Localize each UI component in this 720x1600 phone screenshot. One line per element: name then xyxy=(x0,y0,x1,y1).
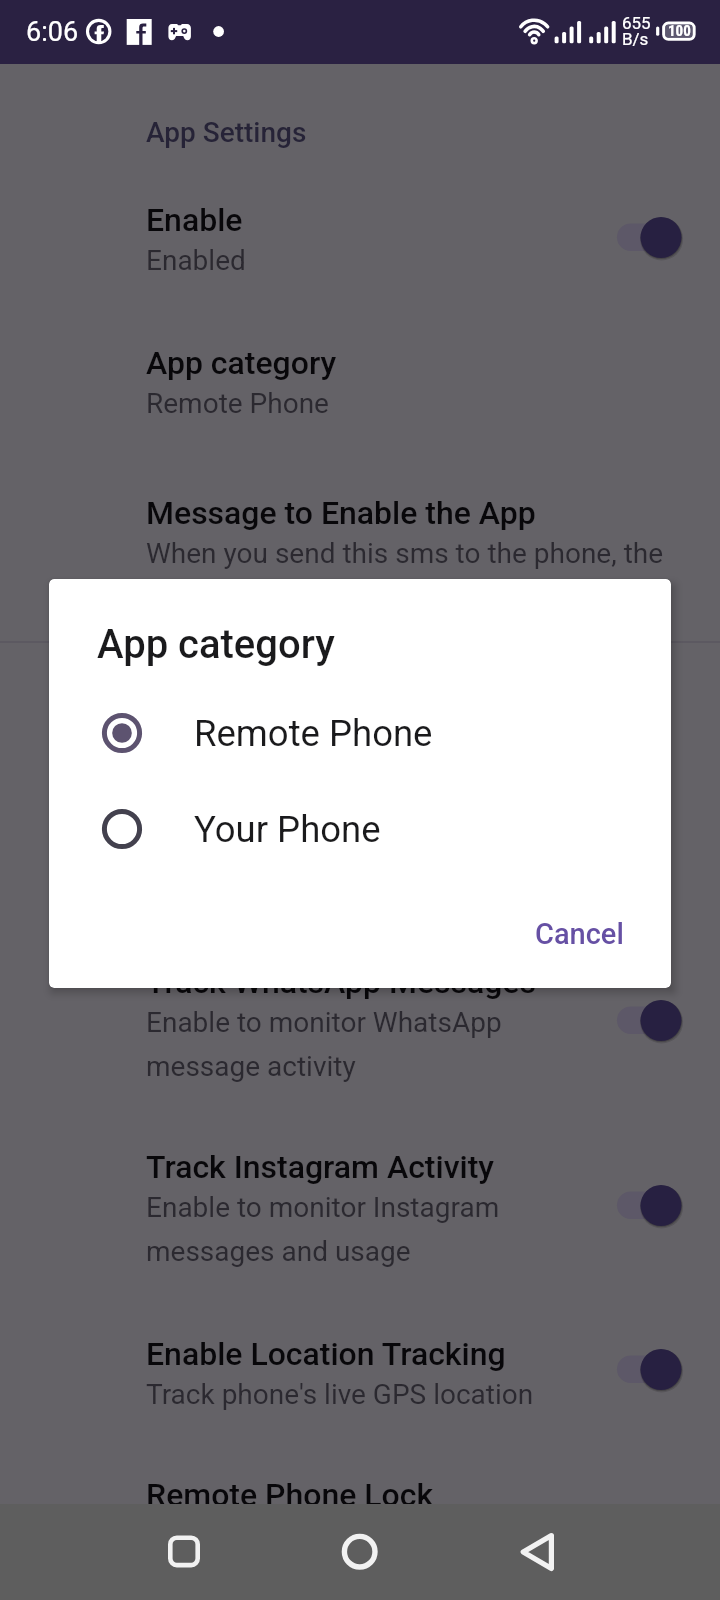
staticText: Remote Phone xyxy=(194,712,433,755)
staticText: App Settings xyxy=(146,116,307,149)
staticText: Remote Phone Lock xyxy=(146,1476,434,1514)
staticText: App category xyxy=(97,621,335,668)
staticText: Track phone's live GPS location xyxy=(146,1378,534,1411)
staticText: App category xyxy=(146,344,337,382)
button[interactable]: Cancel xyxy=(515,903,644,965)
button[interactable]: Recent apps xyxy=(140,1508,228,1596)
button[interactable]: Track Instagram Activity xyxy=(146,1148,666,1263)
button[interactable]: Remote Phone xyxy=(49,685,671,781)
button[interactable]: Track WhatsApp Messages xyxy=(146,963,666,1078)
staticText: Track WhatsApp Messages xyxy=(146,963,536,1001)
staticText: 100 xyxy=(668,22,691,40)
button[interactable]: Home xyxy=(316,1508,404,1596)
staticText: Enable Location Tracking xyxy=(146,1335,506,1373)
staticText: Enabled xyxy=(146,244,246,277)
staticText: Cancel xyxy=(535,917,624,951)
staticText: Enable to monitor Instagram messages and… xyxy=(146,1191,500,1268)
staticText: When you send this sms to the phone, the xyxy=(146,537,664,570)
staticText: 6:06 xyxy=(26,16,79,48)
button[interactable]: Message to Enable the App xyxy=(146,494,666,565)
staticText: Remote Phone xyxy=(146,387,329,420)
button[interactable]: App category xyxy=(146,344,666,415)
staticText: Your Phone xyxy=(194,808,381,851)
staticText: Enable to monitor WhatsApp message activ… xyxy=(146,1006,502,1083)
button[interactable]: Enable xyxy=(146,201,666,272)
button[interactable]: Enable Location Tracking xyxy=(146,1335,666,1406)
staticText: Message to Enable the App xyxy=(146,494,536,532)
button[interactable]: Back xyxy=(490,1508,578,1596)
staticText: 655 B/s xyxy=(622,13,651,49)
staticText: Enable xyxy=(146,201,243,239)
staticText: Track Instagram Activity xyxy=(146,1148,495,1186)
button[interactable]: Your Phone xyxy=(49,781,671,877)
